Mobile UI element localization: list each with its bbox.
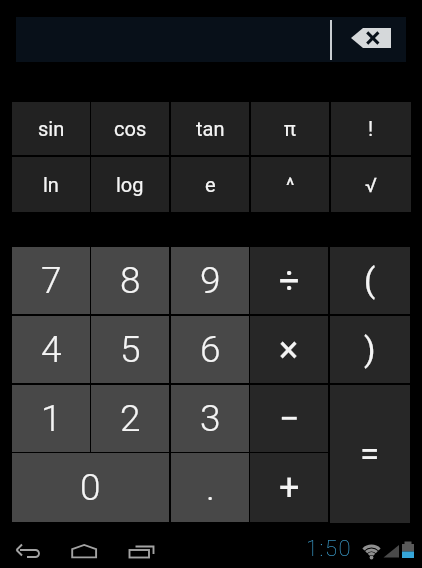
staticText: 0 <box>80 466 101 509</box>
button[interactable]: × <box>250 316 328 383</box>
button[interactable]: 8 <box>91 247 169 314</box>
staticText: = <box>360 434 380 475</box>
button[interactable]: . <box>171 453 249 522</box>
button[interactable]: − <box>250 385 328 452</box>
button[interactable]: 4 <box>12 316 90 383</box>
button[interactable]: tan <box>171 102 249 155</box>
button[interactable]: √ <box>331 157 411 212</box>
button[interactable]: sin <box>12 102 90 155</box>
button[interactable]: 0 <box>12 453 169 522</box>
button[interactable] <box>116 535 160 568</box>
staticText: × <box>279 329 299 371</box>
staticText: log <box>116 173 144 196</box>
button[interactable]: ) <box>330 316 410 383</box>
button[interactable]: = <box>330 385 410 523</box>
staticText: − <box>279 398 300 440</box>
staticText: 1 <box>41 397 62 440</box>
button[interactable]: 3 <box>171 385 249 452</box>
staticText: ^ <box>286 173 295 196</box>
staticText: ) <box>364 330 376 369</box>
staticText: 4 <box>41 328 62 371</box>
staticText: 7 <box>41 259 62 302</box>
staticText: cos <box>114 117 147 140</box>
staticText: 6 <box>200 328 221 371</box>
staticText: ( <box>364 261 376 300</box>
button[interactable] <box>332 17 406 62</box>
button[interactable]: + <box>250 453 328 522</box>
staticText: ! <box>368 117 374 140</box>
staticText: 8 <box>120 259 141 302</box>
staticText: ln <box>43 173 59 196</box>
button[interactable]: 6 <box>171 316 249 383</box>
staticText: + <box>279 467 300 509</box>
button[interactable]: ^ <box>251 157 329 212</box>
button[interactable]: ( <box>330 247 410 314</box>
staticText: tan <box>196 117 225 140</box>
button[interactable]: ! <box>331 102 411 155</box>
staticText: sin <box>38 117 65 140</box>
staticText: 3 <box>200 397 221 440</box>
button[interactable]: 9 <box>171 247 249 314</box>
staticText: π <box>284 117 296 140</box>
button[interactable]: ÷ <box>250 247 328 314</box>
button[interactable] <box>6 535 50 568</box>
button[interactable] <box>62 535 106 568</box>
button[interactable]: e <box>171 157 249 212</box>
button[interactable]: 7 <box>12 247 90 314</box>
staticText: 9 <box>200 259 221 302</box>
button[interactable]: ln <box>12 157 90 212</box>
button[interactable]: log <box>91 157 169 212</box>
button[interactable]: 2 <box>91 385 169 452</box>
button[interactable]: 1 <box>12 385 90 452</box>
staticText: √ <box>365 173 377 196</box>
button[interactable]: π <box>251 102 329 155</box>
staticText: 1:50 <box>306 536 353 562</box>
staticText: 2 <box>120 397 141 440</box>
staticText: . <box>206 466 215 509</box>
staticText: 5 <box>120 328 141 371</box>
staticText: e <box>205 173 216 196</box>
staticText: ÷ <box>279 260 300 302</box>
button[interactable]: cos <box>91 102 169 155</box>
button[interactable]: 5 <box>91 316 169 383</box>
